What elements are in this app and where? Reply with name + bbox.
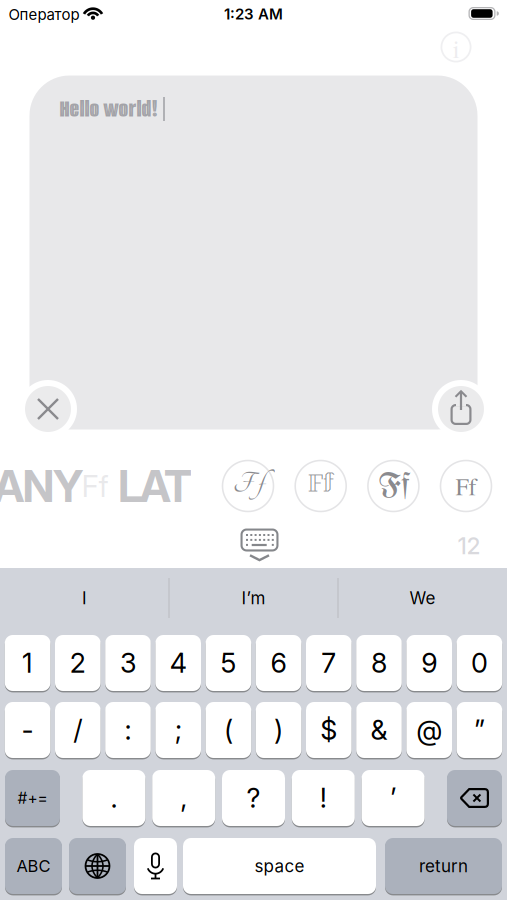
staticText: ’ bbox=[390, 782, 396, 814]
staticText: We bbox=[409, 588, 435, 608]
staticText: Оператор bbox=[8, 5, 79, 23]
staticText: 9 bbox=[421, 647, 437, 679]
button[interactable]: 2 bbox=[55, 634, 101, 692]
staticText: 8 bbox=[371, 647, 387, 679]
button[interactable]: Font style 1 bbox=[221, 459, 274, 512]
staticText: 5 bbox=[220, 647, 236, 679]
button[interactable]: @ bbox=[406, 701, 452, 759]
button[interactable]: Info bbox=[440, 31, 471, 62]
button[interactable]: Dismiss keyboard bbox=[238, 526, 281, 564]
button[interactable]: I’m bbox=[173, 573, 333, 623]
staticText: ! bbox=[320, 782, 327, 814]
staticText: return bbox=[419, 856, 468, 876]
staticText: ” bbox=[474, 714, 485, 746]
button[interactable]: Next keyboard bbox=[69, 837, 126, 895]
button[interactable]: We bbox=[342, 573, 502, 623]
button[interactable]: Font style 2 bbox=[294, 459, 347, 512]
button[interactable]: 4 bbox=[155, 634, 201, 692]
button[interactable]: return bbox=[385, 837, 502, 895]
button[interactable]: ’ bbox=[362, 769, 425, 827]
staticText: ? bbox=[246, 782, 260, 814]
staticText: 1:23 AM bbox=[224, 5, 283, 23]
staticText: Hello world! bbox=[59, 94, 157, 124]
button[interactable]: ; bbox=[155, 701, 201, 759]
staticText: , bbox=[180, 782, 187, 814]
button[interactable]: ANY bbox=[0, 459, 83, 513]
staticText: ) bbox=[274, 714, 283, 746]
button[interactable]: 6 bbox=[256, 634, 301, 692]
staticText: 1 bbox=[22, 647, 33, 679]
staticText: - bbox=[22, 714, 34, 746]
button[interactable]: 9 bbox=[406, 634, 452, 692]
staticText: 3 bbox=[120, 647, 136, 679]
staticText: ANY bbox=[0, 459, 83, 513]
staticText: i bbox=[452, 31, 459, 65]
staticText: @ bbox=[416, 714, 442, 746]
staticText: 0 bbox=[471, 647, 488, 679]
button[interactable]: . bbox=[82, 769, 145, 827]
button[interactable]: Clear text bbox=[19, 380, 77, 438]
button[interactable]: LAT bbox=[118, 459, 192, 513]
button[interactable]: space bbox=[183, 837, 376, 895]
staticText: Ff bbox=[81, 468, 108, 504]
staticText: LAT bbox=[118, 459, 192, 513]
staticText: ABC bbox=[16, 856, 50, 876]
staticText: & bbox=[370, 714, 387, 746]
staticText: 6 bbox=[271, 647, 287, 679]
button[interactable]: Share bbox=[432, 380, 490, 438]
staticText: ( bbox=[224, 714, 233, 746]
button[interactable]: 5 bbox=[206, 634, 251, 692]
button[interactable]: I bbox=[4, 573, 164, 623]
staticText: 2 bbox=[70, 647, 86, 679]
button[interactable]: 8 bbox=[356, 634, 402, 692]
staticText: I bbox=[82, 588, 87, 608]
button[interactable]: 1 bbox=[5, 634, 50, 692]
button[interactable]: 3 bbox=[105, 634, 151, 692]
staticText: I’m bbox=[241, 588, 265, 608]
staticText: / bbox=[73, 714, 82, 746]
button[interactable]: 7 bbox=[306, 634, 352, 692]
button[interactable]: / bbox=[55, 701, 101, 759]
button[interactable]: $ bbox=[306, 701, 352, 759]
button[interactable]: Font style 4 bbox=[439, 459, 492, 512]
button[interactable]: , bbox=[152, 769, 215, 827]
staticText: #+= bbox=[17, 789, 47, 807]
button[interactable]: ! bbox=[292, 769, 355, 827]
button[interactable]: Delete bbox=[447, 769, 502, 827]
button[interactable]: Dictate bbox=[134, 837, 177, 895]
staticText: F f bbox=[233, 468, 263, 499]
button[interactable]: ABC bbox=[5, 837, 62, 895]
staticText: $ bbox=[320, 714, 337, 746]
staticText: : bbox=[124, 714, 131, 746]
button[interactable]: ? bbox=[222, 769, 285, 827]
staticText: Ff bbox=[455, 470, 476, 502]
button[interactable]: ( bbox=[206, 701, 251, 759]
staticText: ; bbox=[175, 714, 182, 746]
button[interactable]: ) bbox=[256, 701, 301, 759]
staticText: . bbox=[110, 782, 117, 814]
button[interactable]: : bbox=[105, 701, 151, 759]
staticText: Ff bbox=[308, 466, 333, 505]
staticText: 12 bbox=[457, 532, 480, 560]
staticText: 4 bbox=[170, 647, 187, 679]
button[interactable]: ” bbox=[457, 701, 502, 759]
staticText: space bbox=[254, 856, 304, 876]
button[interactable]: 0 bbox=[457, 634, 502, 692]
button[interactable]: - bbox=[5, 701, 50, 759]
staticText: Ff bbox=[378, 470, 408, 502]
staticText: 7 bbox=[321, 647, 336, 679]
button[interactable]: & bbox=[356, 701, 402, 759]
button[interactable]: #+= bbox=[5, 769, 60, 827]
button[interactable]: Font style 3 bbox=[367, 459, 420, 512]
